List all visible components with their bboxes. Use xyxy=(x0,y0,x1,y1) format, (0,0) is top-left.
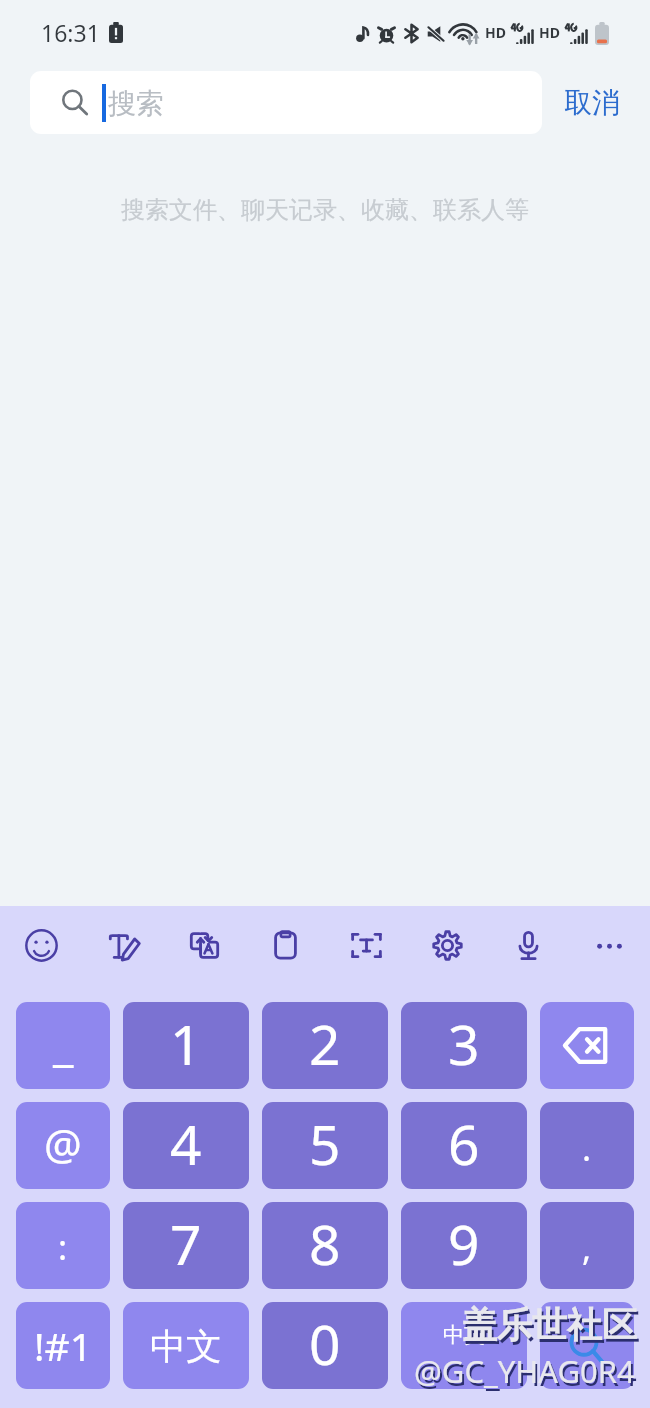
button[interactable]: 取消 xyxy=(552,75,632,130)
button[interactable]: 9 xyxy=(401,1202,527,1289)
staticText: 盖乐世社区 xyxy=(464,1306,639,1350)
staticText: 3 xyxy=(448,1006,480,1081)
staticText: 中英 xyxy=(443,1322,485,1348)
button[interactable]: Translate xyxy=(164,916,245,974)
button[interactable]: 中英 xyxy=(401,1302,527,1389)
button[interactable]: 7 xyxy=(123,1202,249,1289)
button[interactable]: 8 xyxy=(262,1202,388,1289)
staticText: @GC_YHAG0R4 xyxy=(416,1353,637,1395)
button[interactable]: 6 xyxy=(401,1102,527,1189)
button[interactable]: @ xyxy=(16,1102,110,1189)
button[interactable]: More xyxy=(569,916,650,974)
staticText: : xyxy=(58,1224,68,1270)
staticText: , xyxy=(582,1225,592,1271)
button[interactable]: 1 xyxy=(123,1002,249,1089)
button[interactable]: 3 xyxy=(401,1002,527,1089)
button[interactable]: Emoji xyxy=(0,916,82,974)
staticText: 0 xyxy=(309,1306,341,1381)
button[interactable]: , xyxy=(540,1202,634,1289)
staticText: @ xyxy=(44,1115,82,1172)
button[interactable]: Voice input xyxy=(488,916,569,974)
staticText: 搜索 xyxy=(108,86,164,121)
staticText: 搜索文件、聊天记录、收藏、联系人等 xyxy=(121,195,529,225)
button[interactable]: 2 xyxy=(262,1002,388,1089)
button[interactable]: : xyxy=(16,1202,110,1289)
button[interactable]: _ xyxy=(16,1002,110,1089)
staticText: HD xyxy=(539,23,560,42)
staticText: @GC_YHAG0R4 xyxy=(414,1350,635,1392)
button[interactable]: 0 xyxy=(262,1302,388,1389)
staticText: !#1 xyxy=(34,1319,92,1372)
staticText: 5 xyxy=(309,1106,341,1181)
staticText: . xyxy=(582,1125,592,1171)
button[interactable]: Clipboard xyxy=(245,916,326,974)
button[interactable]: 4 xyxy=(123,1102,249,1189)
staticText: _ xyxy=(53,1012,74,1075)
staticText: 9 xyxy=(448,1206,480,1281)
button[interactable]: Text scan xyxy=(326,916,407,974)
button[interactable]: 5 xyxy=(262,1102,388,1189)
button[interactable]: Backspace xyxy=(540,1002,634,1089)
button[interactable]: !#1 xyxy=(16,1302,110,1389)
staticText: 2 xyxy=(309,1006,341,1081)
staticText: 盖乐世社区 xyxy=(462,1303,637,1347)
button[interactable]: Settings xyxy=(407,916,488,974)
staticText: HD xyxy=(485,23,506,42)
button[interactable]: 中文 xyxy=(123,1302,249,1389)
staticText: 1 xyxy=(170,1006,202,1081)
staticText: 16:31 xyxy=(41,17,100,48)
staticText: 7 xyxy=(170,1206,202,1281)
staticText: 8 xyxy=(309,1206,341,1281)
staticText: 中文 xyxy=(150,1324,222,1369)
staticText: 6 xyxy=(448,1106,480,1181)
button[interactable]: Search xyxy=(540,1302,634,1389)
staticText: 4 xyxy=(170,1106,202,1181)
button[interactable]: Handwriting xyxy=(82,916,164,974)
staticText: 取消 xyxy=(564,85,620,120)
button[interactable]: . xyxy=(540,1102,634,1189)
button[interactable]: 搜索 xyxy=(30,71,542,134)
